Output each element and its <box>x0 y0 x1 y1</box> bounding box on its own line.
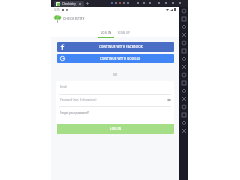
button[interactable]: Emulator control 7 <box>179 63 188 71</box>
button[interactable]: Emulator control 12 <box>179 103 188 111</box>
button[interactable]: CONTINUE WITH GOOGLE <box>57 54 174 63</box>
staticText: CONTINUE WITH FACEBOOK <box>99 45 143 49</box>
staticText: SIGN UP <box>116 31 132 35</box>
button[interactable]: Emulator control 4 <box>179 39 188 47</box>
button[interactable]: Email <box>56 81 174 93</box>
button[interactable]: Forgot your password? <box>60 111 89 115</box>
button[interactable]: Emulator control 10 <box>179 87 188 95</box>
staticText: CONTINUE WITH GOOGLE <box>100 57 141 61</box>
staticText: CHECKISTRY <box>63 17 85 21</box>
button[interactable]: SIGN UP <box>116 28 132 38</box>
button[interactable]: Emulator control 15 <box>179 127 188 135</box>
button[interactable]: Emulator control 1 <box>179 15 188 23</box>
staticText: Password (min. 6 characters) <box>60 98 97 102</box>
button[interactable]: Checkistry <box>54 1 84 7</box>
button[interactable]: Password (min. 6 characters) <box>56 94 174 106</box>
button[interactable]: New tab <box>86 2 89 5</box>
button[interactable]: CONTINUE WITH FACEBOOK <box>57 42 174 52</box>
staticText: LOG IN <box>98 31 114 35</box>
button[interactable]: Emulator control 2 <box>179 23 188 31</box>
button[interactable]: Emulator control 14 <box>179 119 188 127</box>
staticText: Checkistry <box>62 2 76 6</box>
button[interactable]: Emulator control 9 <box>179 79 188 87</box>
staticText: 3:35 <box>54 8 60 12</box>
staticText: OR <box>51 72 179 76</box>
staticText: LOG IN <box>110 127 122 131</box>
button[interactable]: Emulator control 8 <box>179 71 188 79</box>
button[interactable]: LOG IN <box>57 124 174 134</box>
button[interactable]: Emulator control 6 <box>179 55 188 63</box>
button[interactable]: Emulator control 3 <box>179 31 188 39</box>
button[interactable]: LOG IN <box>98 28 114 38</box>
staticText: Email <box>60 85 67 89</box>
button[interactable]: Emulator control 11 <box>179 95 188 103</box>
button[interactable]: Emulator control 5 <box>179 47 188 55</box>
button[interactable]: Show password <box>167 98 171 102</box>
button[interactable]: Emulator control 0 <box>179 7 188 15</box>
button[interactable]: Emulator control 13 <box>179 111 188 119</box>
